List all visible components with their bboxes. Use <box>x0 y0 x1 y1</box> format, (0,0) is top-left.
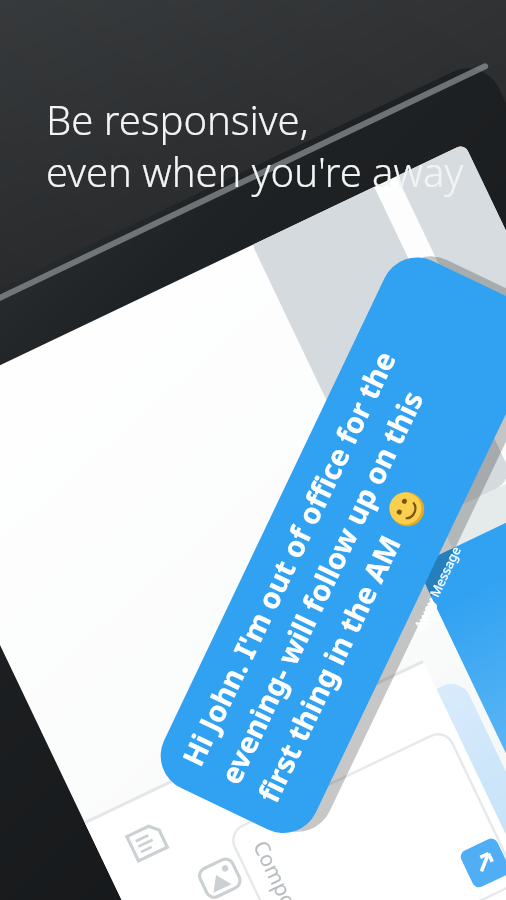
button[interactable]: Compose message <box>150 640 270 840</box>
